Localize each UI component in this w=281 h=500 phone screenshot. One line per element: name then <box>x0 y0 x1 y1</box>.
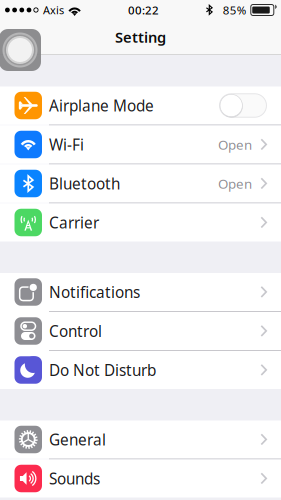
staticText: Axis <box>43 3 64 17</box>
button[interactable]: Notifications <box>0 273 281 311</box>
staticText: Bluetooth <box>49 173 120 194</box>
button[interactable]: Airplane Mode <box>0 86 281 124</box>
staticText: Airplane Mode <box>49 95 154 116</box>
staticText: 00:22 <box>128 2 159 18</box>
staticText: Open <box>218 174 252 193</box>
button[interactable]: General <box>0 420 281 458</box>
staticText: Open <box>218 135 252 154</box>
button[interactable]: Wi-Fi <box>0 125 281 163</box>
button[interactable]: Do Not Disturb <box>0 351 281 389</box>
staticText: Carrier <box>49 212 99 233</box>
staticText: Notifications <box>49 282 140 302</box>
staticText: Control <box>49 321 102 341</box>
button[interactable]: Carrier <box>0 203 281 241</box>
staticText: Setting <box>115 27 166 47</box>
staticText: Do Not Disturb <box>49 360 156 380</box>
staticText: 85% <box>223 2 247 18</box>
button[interactable]: Control <box>0 312 281 350</box>
button[interactable]: Sounds <box>0 459 281 497</box>
staticText: Wi-Fi <box>49 134 84 155</box>
staticText: Sounds <box>49 468 100 489</box>
button[interactable]: AssistiveTouch <box>0 29 41 71</box>
button[interactable]: Bluetooth <box>0 164 281 202</box>
staticText: General <box>49 429 106 450</box>
